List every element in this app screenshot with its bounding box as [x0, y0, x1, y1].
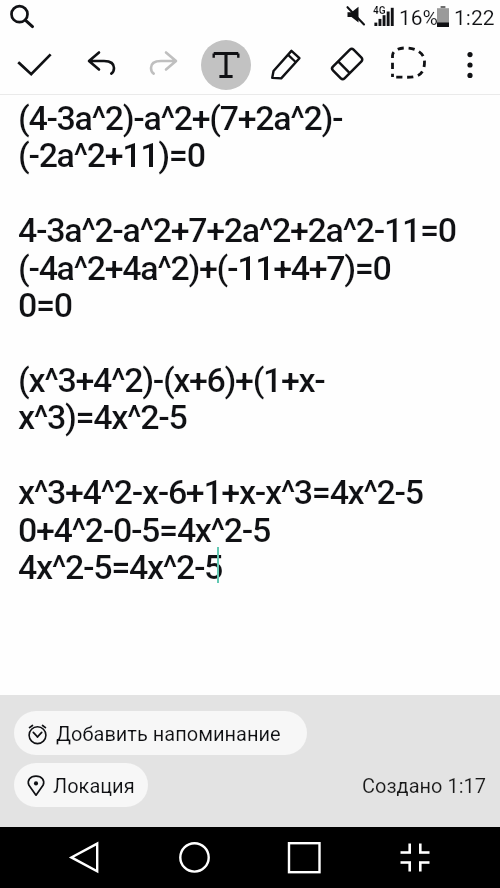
button[interactable]: Добавить напоминание [14, 711, 307, 755]
staticText: 0+4^2-0-5=4x^2-5 [18, 510, 271, 550]
button[interactable]: Recents [280, 827, 330, 888]
staticText: (-2a^2+11)=0 [18, 135, 205, 175]
button[interactable]: Text tool [201, 40, 251, 90]
button[interactable]: Select [388, 36, 432, 94]
button[interactable]: Redo [146, 36, 184, 94]
staticText: 0=0 [18, 285, 72, 325]
button[interactable]: Done [14, 36, 56, 94]
staticText: (4-3a^2)-a^2+(7+2a^2)- [18, 98, 343, 138]
button[interactable]: Локация [14, 763, 148, 807]
button[interactable]: Undo [84, 36, 122, 94]
staticText: 4G [373, 5, 386, 17]
staticText: 16% [399, 6, 438, 31]
staticText: (x^3+4^2)-(x+6)+(1+x- [18, 360, 325, 400]
staticText: x^3)=4x^2-5 [18, 397, 187, 437]
staticText: 4x^2-5=4x^2-5 [18, 547, 223, 587]
button[interactable]: Collapse [390, 827, 440, 888]
staticText: Добавить напоминание [56, 722, 281, 745]
button[interactable]: More options [455, 50, 485, 80]
staticText: x^3+4^2-x-6+1+x-x^3=4x^2-5 [18, 472, 423, 512]
button[interactable]: Back [60, 827, 110, 888]
staticText: Локация [53, 774, 135, 797]
staticText: 4-3a^2-a^2+7+2a^2+2a^2-11=0 [18, 210, 456, 250]
staticText: (-4a^2+4a^2)+(-11+4+7)=0 [18, 248, 391, 288]
staticText: Создано 1:17 [362, 774, 486, 797]
button[interactable]: Pen [270, 48, 304, 82]
button[interactable]: Eraser [326, 36, 370, 94]
staticText: 1:22 [454, 6, 495, 31]
button[interactable]: Home [170, 827, 220, 888]
button[interactable]: Search [4, 0, 36, 32]
